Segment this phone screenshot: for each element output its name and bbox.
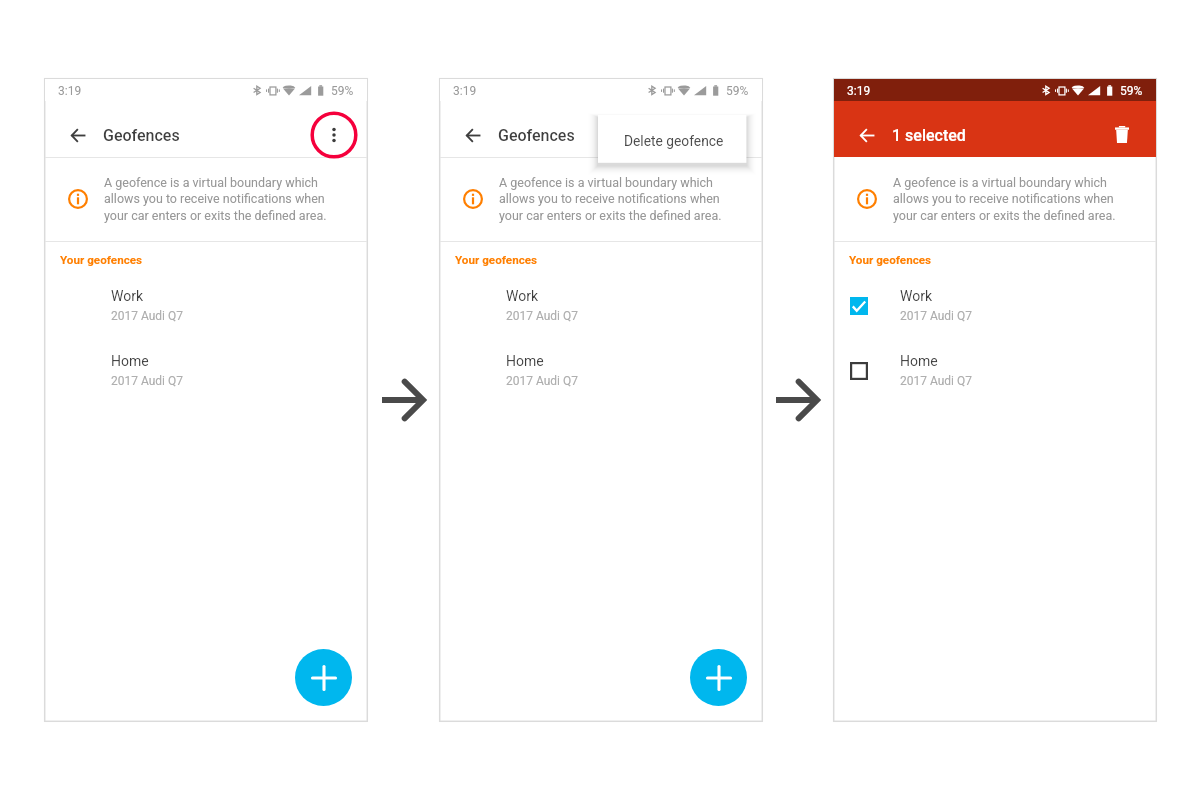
button[interactable]: Delete [1108, 120, 1136, 148]
staticText: your car enters or exits the defined are… [499, 208, 722, 223]
button[interactable]: Home [439, 344, 763, 402]
staticText: 2017 Audi Q7 [900, 374, 972, 388]
button[interactable]: Not selected [833, 344, 1157, 402]
staticText: A geofence is a virtual boundary which [104, 175, 318, 190]
button[interactable]: Work [439, 279, 763, 337]
button[interactable]: Back [64, 121, 92, 149]
button[interactable]: Back [853, 121, 881, 149]
staticText: Geofences [498, 126, 575, 145]
staticText: 2017 Audi Q7 [111, 309, 183, 323]
staticText: Work [900, 288, 933, 304]
staticText: Your geofences [849, 253, 932, 267]
staticText: Your geofences [60, 253, 143, 267]
button[interactable]: Add geofence [295, 649, 352, 706]
button[interactable]: Home [44, 344, 368, 402]
button[interactable]: Selected [833, 279, 1157, 337]
staticText: 3:19 [58, 84, 82, 98]
staticText: Home [900, 353, 938, 369]
staticText: Work [506, 288, 539, 304]
staticText: 59% [1120, 84, 1143, 98]
button[interactable]: Selected [850, 297, 868, 315]
staticText: your car enters or exits the defined are… [893, 208, 1116, 223]
staticText: 2017 Audi Q7 [900, 309, 972, 323]
staticText: 59% [726, 84, 749, 98]
staticText: Work [111, 288, 144, 304]
staticText: A geofence is a virtual boundary which [499, 175, 713, 190]
staticText: Home [111, 353, 149, 369]
button[interactable]: Back [459, 121, 487, 149]
staticText: 2017 Audi Q7 [111, 374, 183, 388]
staticText: your car enters or exits the defined are… [104, 208, 327, 223]
staticText: 2017 Audi Q7 [506, 374, 578, 388]
staticText: 59% [331, 84, 354, 98]
staticText: Your geofences [455, 253, 538, 267]
button[interactable]: Not selected [850, 362, 868, 380]
staticText: A geofence is a virtual boundary which [893, 175, 1107, 190]
staticText: Home [506, 353, 544, 369]
button[interactable]: Add geofence [690, 649, 747, 706]
staticText: allows you to receive notifications when [104, 191, 325, 206]
staticText: Geofences [103, 126, 180, 145]
staticText: 3:19 [847, 84, 871, 98]
button[interactable]: Work [44, 279, 368, 337]
button[interactable]: Delete geofence [598, 115, 746, 163]
staticText: Delete geofence [624, 133, 724, 149]
button[interactable]: More options [705, 111, 753, 159]
staticText: 1 selected [892, 126, 966, 145]
staticText: allows you to receive notifications when [499, 191, 720, 206]
staticText: 3:19 [453, 84, 477, 98]
staticText: 2017 Audi Q7 [506, 309, 578, 323]
staticText: allows you to receive notifications when [893, 191, 1114, 206]
button[interactable]: More options [310, 111, 358, 159]
